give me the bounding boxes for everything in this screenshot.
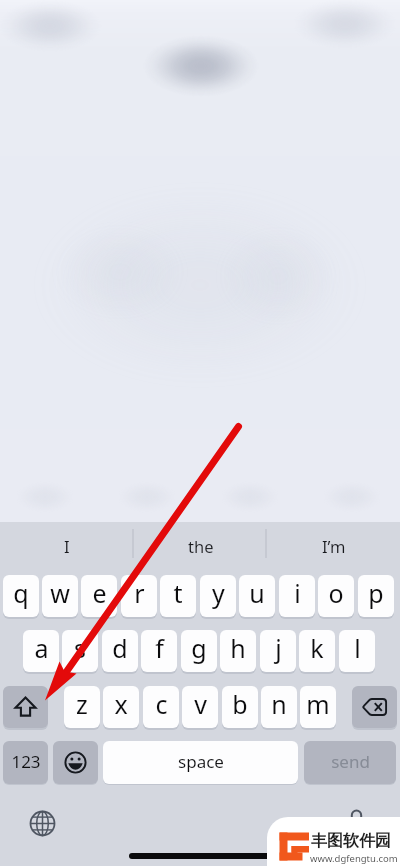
staticText: z [76, 687, 88, 721]
staticText: www.dgfengtu.com [310, 852, 398, 865]
staticText: i [294, 576, 301, 610]
staticText: I’m [322, 535, 346, 557]
staticText: 丰图软件园 [311, 831, 391, 851]
staticText: l [354, 631, 361, 665]
button[interactable]: j [260, 630, 296, 672]
staticText: send [331, 750, 370, 773]
button[interactable]: I [0, 522, 134, 572]
staticText: x [114, 687, 128, 721]
staticText: m [306, 687, 330, 721]
staticText: u [249, 576, 265, 610]
button[interactable]: z [64, 686, 100, 728]
button[interactable]: Shift [3, 686, 48, 728]
button[interactable]: h [220, 630, 256, 672]
staticText: b [232, 687, 248, 721]
staticText: k [310, 631, 324, 665]
staticText: r [134, 576, 145, 610]
staticText: a [34, 631, 49, 665]
staticText: p [368, 576, 384, 610]
button[interactable]: Dictate [344, 809, 369, 834]
button[interactable]: o [318, 575, 354, 617]
button[interactable]: u [239, 575, 275, 617]
button[interactable]: 123 [3, 741, 48, 784]
button[interactable]: w [42, 575, 78, 617]
button[interactable]: p [358, 575, 394, 617]
button[interactable]: e [81, 575, 117, 617]
staticText: I [64, 535, 70, 557]
button[interactable]: s [62, 630, 98, 672]
button[interactable]: Backspace [352, 686, 397, 728]
staticText: f [155, 631, 164, 665]
staticText: h [230, 631, 246, 665]
button[interactable]: Emoji [53, 741, 98, 784]
button[interactable]: a [23, 630, 59, 672]
button[interactable]: n [261, 686, 297, 728]
button[interactable]: Switch keyboard [30, 811, 55, 836]
staticText: o [328, 576, 344, 610]
button[interactable]: c [143, 686, 179, 728]
staticText: t [173, 576, 183, 610]
button[interactable]: send [304, 741, 396, 784]
staticText: w [50, 576, 70, 610]
button[interactable]: g [181, 630, 217, 672]
button[interactable]: I’m [267, 522, 400, 572]
staticText: q [13, 576, 29, 610]
button[interactable]: k [299, 630, 335, 672]
button[interactable]: v [182, 686, 218, 728]
staticText: n [271, 687, 287, 721]
staticText: c [155, 687, 168, 721]
staticText: the [188, 535, 214, 557]
staticText: space [178, 750, 224, 773]
staticText: 123 [11, 750, 41, 773]
staticText: d [112, 631, 128, 665]
staticText: y [212, 576, 225, 610]
button[interactable]: space [103, 741, 298, 784]
staticText: g [191, 631, 207, 665]
staticText: j [275, 631, 282, 665]
button[interactable]: the [134, 522, 267, 572]
button[interactable]: q [3, 575, 39, 617]
button[interactable]: t [160, 575, 196, 617]
button[interactable]: y [200, 575, 236, 617]
button[interactable]: x [103, 686, 139, 728]
button[interactable]: i [279, 575, 315, 617]
staticText: e [92, 576, 107, 610]
button[interactable]: f [141, 630, 177, 672]
button[interactable]: r [121, 575, 157, 617]
staticText: v [194, 687, 207, 721]
button[interactable]: l [339, 630, 375, 672]
button[interactable]: b [222, 686, 258, 728]
staticText: s [74, 631, 86, 665]
button[interactable]: m [300, 686, 336, 728]
button[interactable]: d [102, 630, 138, 672]
